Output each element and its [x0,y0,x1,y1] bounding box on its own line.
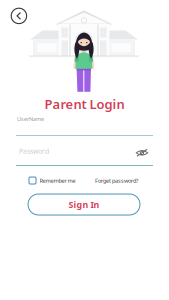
button[interactable]: Remember me [29,175,75,186]
staticText: Password [19,146,49,156]
staticText: UserName [17,115,44,123]
staticText: Forget password? [95,177,138,184]
button[interactable]: Sign In [28,194,140,215]
button[interactable]: Show password [133,146,151,160]
button[interactable]: Forget password? [95,175,138,186]
staticText: Sign In [68,198,99,210]
staticText: Remember me [39,177,75,184]
button[interactable]: Back [7,4,31,28]
staticText: Parent Login [44,95,124,113]
